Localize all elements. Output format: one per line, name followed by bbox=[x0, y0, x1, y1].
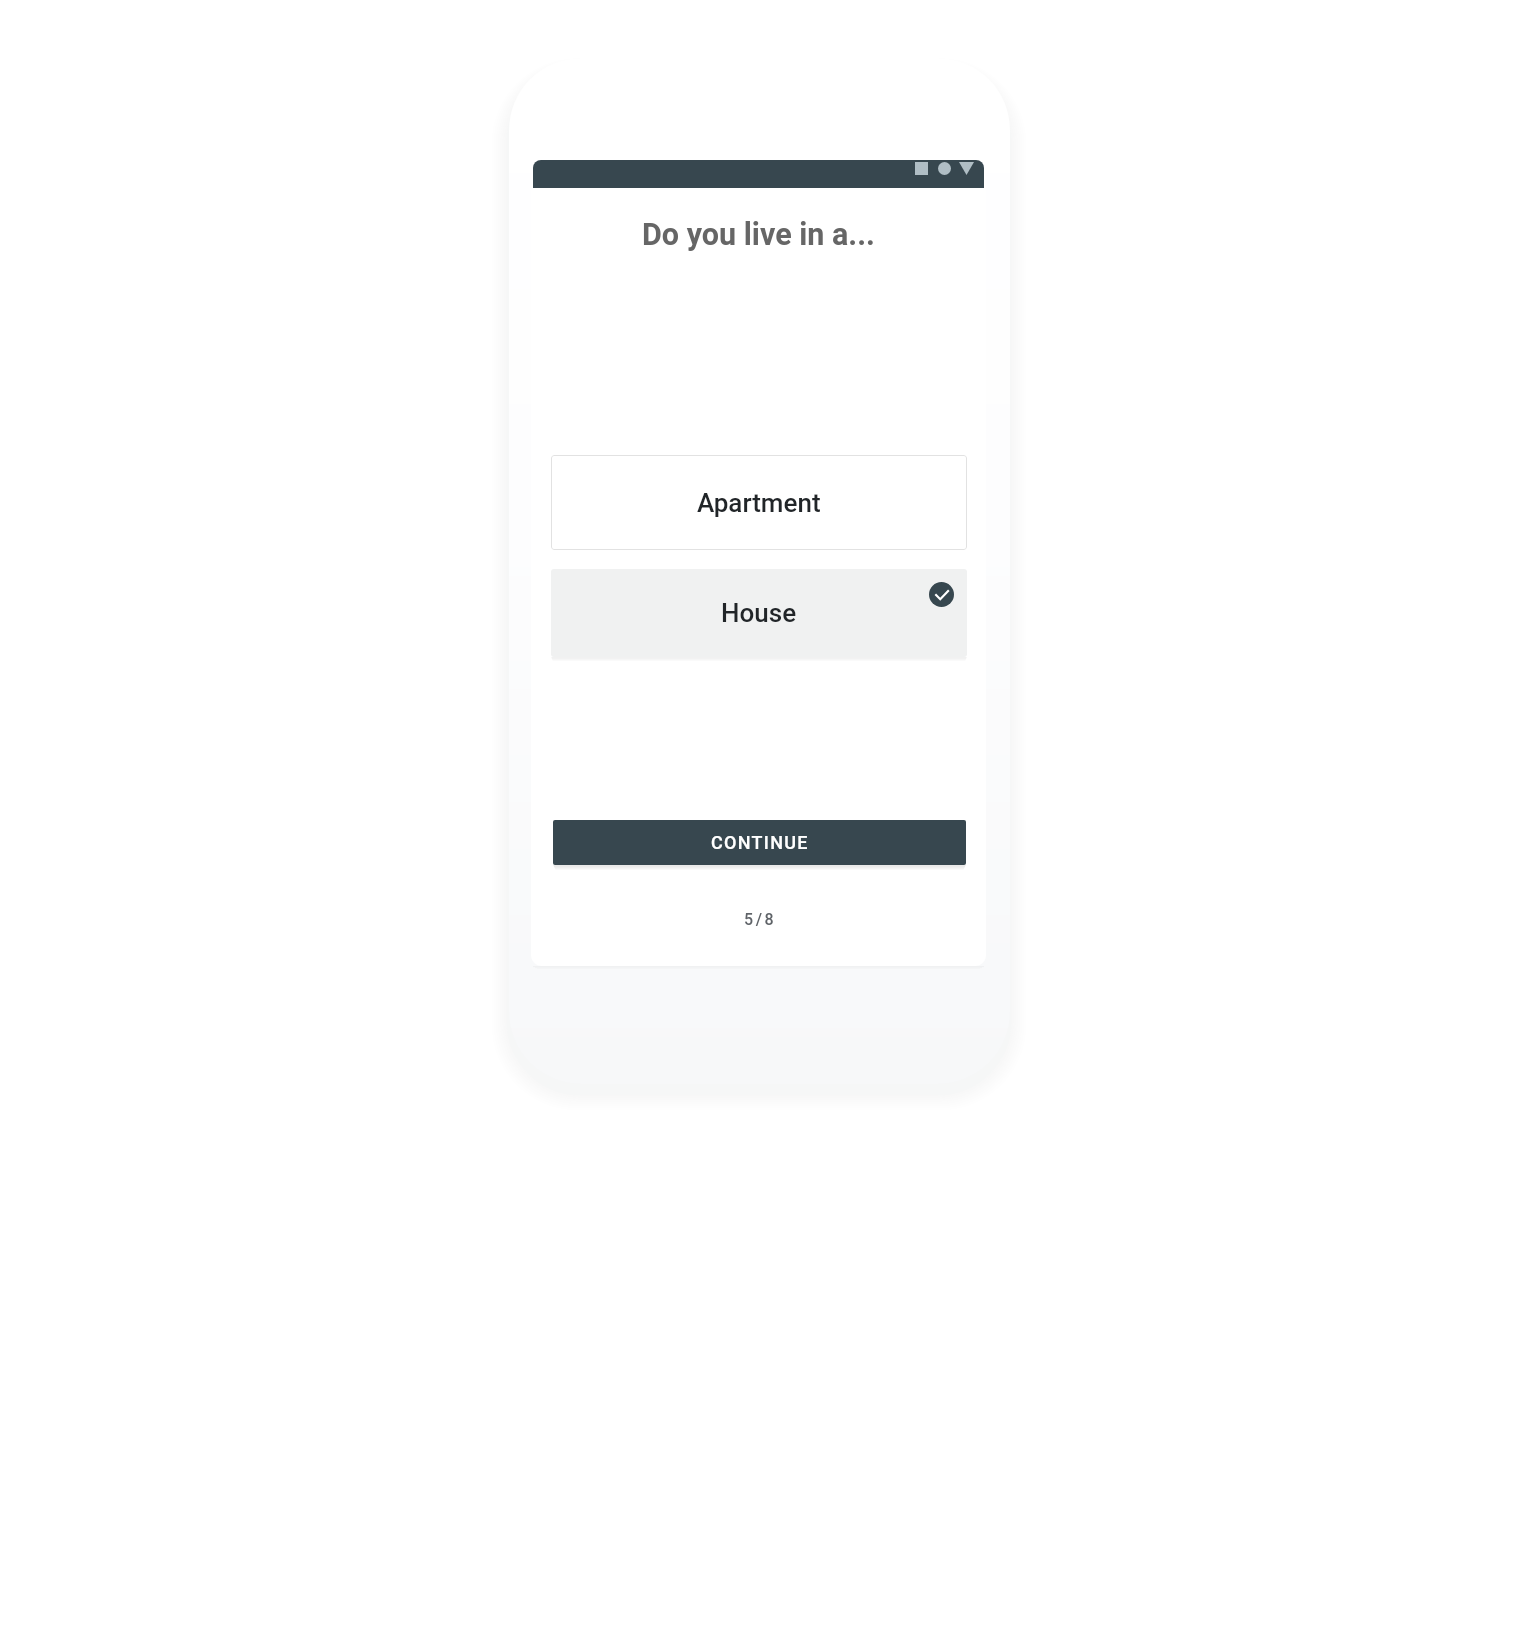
staticText: CONTINUE bbox=[711, 832, 809, 853]
button[interactable]: House bbox=[551, 569, 967, 657]
staticText: House bbox=[721, 598, 797, 628]
button[interactable]: Apartment bbox=[551, 455, 967, 550]
other: Home bbox=[938, 162, 951, 175]
staticText: 5 / 8 bbox=[531, 910, 986, 929]
other: Selected bbox=[929, 582, 954, 607]
other: Back bbox=[959, 162, 974, 175]
button[interactable]: CONTINUE bbox=[553, 820, 966, 865]
staticText: Apartment bbox=[697, 488, 821, 518]
staticText: Do you live in a... bbox=[531, 217, 986, 253]
